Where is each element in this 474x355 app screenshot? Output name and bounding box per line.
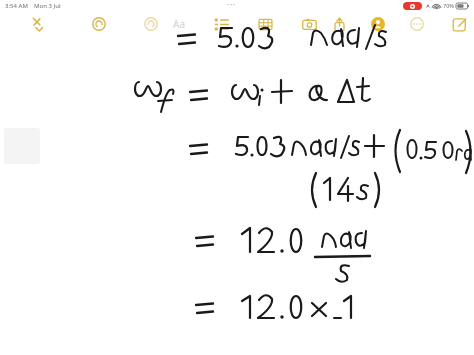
- button[interactable]: Markup tools: [24, 12, 54, 36]
- staticText: • • •: [227, 2, 236, 9]
- button[interactable]: Redo: [136, 12, 166, 36]
- button[interactable]: Insert photo: [294, 12, 324, 36]
- button[interactable]: Insert table: [250, 12, 280, 36]
- button[interactable]: Undo: [84, 12, 114, 36]
- staticText: 3:54 AM: [5, 2, 28, 10]
- button[interactable]: Text format: [166, 12, 192, 36]
- staticText: Mon 3 Jul: [34, 2, 61, 10]
- button[interactable]: Account: [366, 12, 390, 36]
- button[interactable]: More options: [402, 12, 432, 36]
- button[interactable]: Checklist: [206, 12, 236, 36]
- button[interactable]: Share: [324, 12, 354, 36]
- staticText: Aa: [173, 17, 185, 31]
- staticText: 70%: [443, 2, 454, 9]
- button[interactable]: New note: [444, 12, 474, 36]
